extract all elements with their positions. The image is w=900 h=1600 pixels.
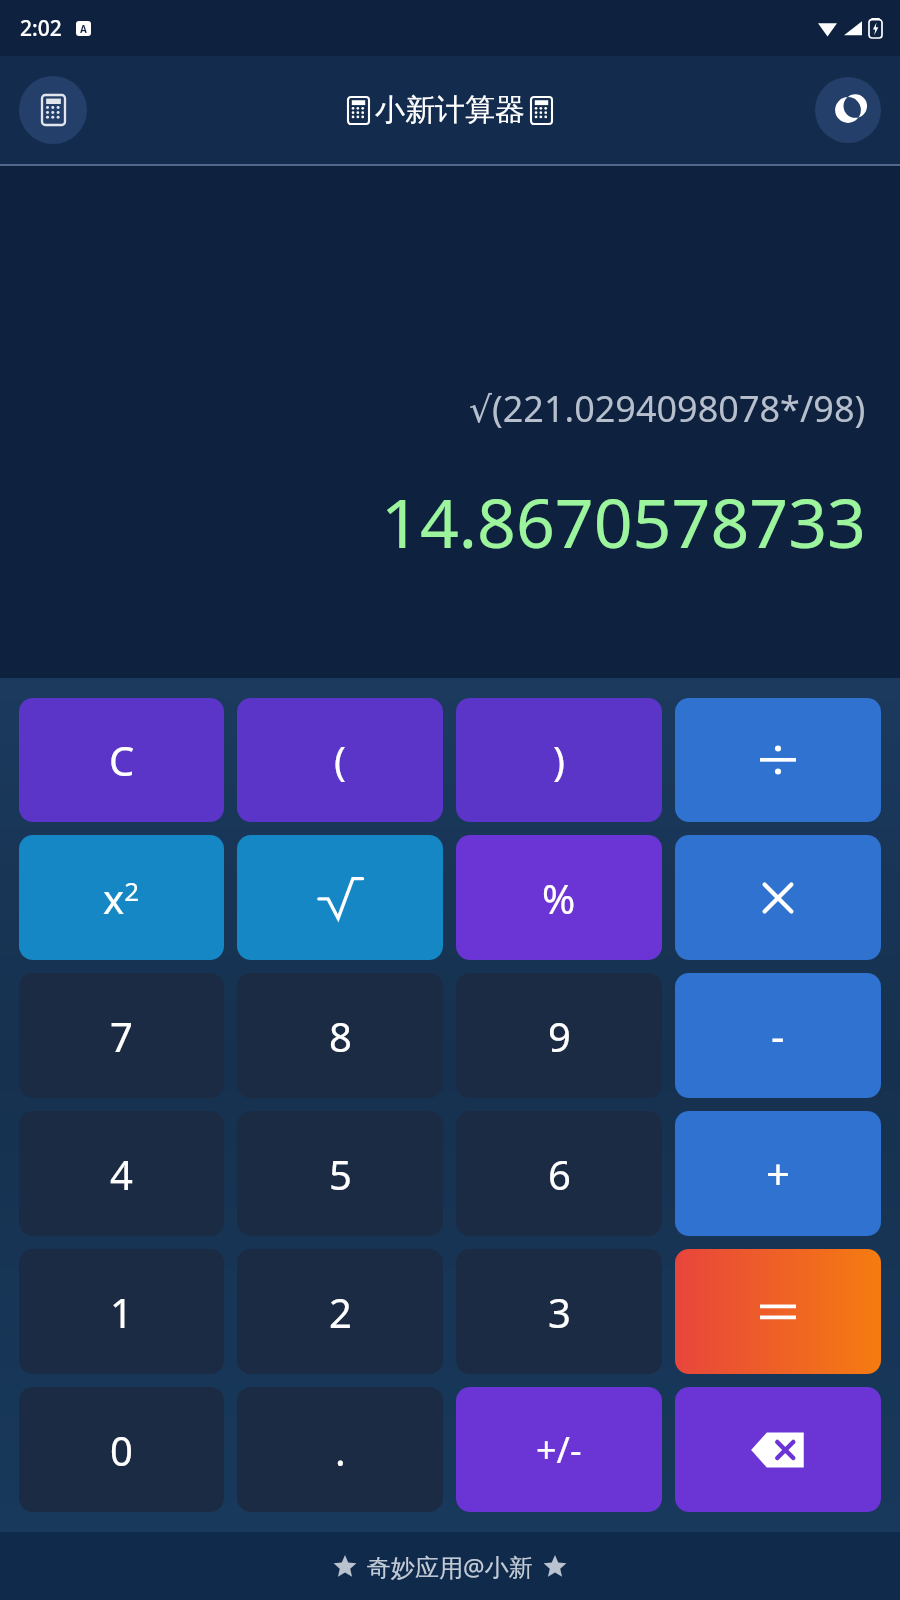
staticText: - xyxy=(771,1007,785,1064)
button[interactable]: Backspace xyxy=(675,1387,881,1512)
staticText: 14.8670578733 xyxy=(381,475,866,568)
staticText: A xyxy=(80,22,87,36)
button[interactable] xyxy=(675,835,881,960)
staticText: 2 xyxy=(329,1285,352,1339)
staticText: 7 xyxy=(110,1009,133,1063)
staticText: 9 xyxy=(548,1009,571,1063)
staticText: +/- xyxy=(536,1425,582,1474)
button[interactable] xyxy=(237,835,443,960)
staticText: 4 xyxy=(110,1147,133,1201)
staticText: + xyxy=(766,1145,791,1202)
button[interactable]: 2 xyxy=(237,1249,443,1374)
staticText: % xyxy=(542,871,576,925)
button[interactable] xyxy=(675,698,881,822)
staticText: 0 xyxy=(110,1423,133,1477)
button[interactable]: 6 xyxy=(456,1111,662,1236)
button[interactable]: C xyxy=(19,698,224,822)
staticText: 小新计算器 xyxy=(375,91,525,129)
staticText: 5 xyxy=(329,1147,352,1201)
button[interactable] xyxy=(675,1249,881,1374)
button[interactable]: + xyxy=(675,1111,881,1236)
staticText: 1 xyxy=(110,1285,133,1339)
staticText: ( xyxy=(334,733,346,787)
staticText: C xyxy=(109,733,135,787)
button[interactable]: % xyxy=(456,835,662,960)
staticText: √(221.0294098078*/98) xyxy=(469,384,866,433)
staticText: . xyxy=(335,1423,346,1477)
staticText: ) xyxy=(553,733,565,787)
button[interactable]: Calculator modes xyxy=(19,76,87,144)
button[interactable]: Toggle dark mode xyxy=(815,77,881,143)
button[interactable]: x2 xyxy=(19,835,224,960)
button[interactable]: +/- xyxy=(456,1387,662,1512)
button[interactable]: 8 xyxy=(237,973,443,1098)
button[interactable]: - xyxy=(675,973,881,1098)
button[interactable]: 9 xyxy=(456,973,662,1098)
staticText: x2 xyxy=(103,871,140,925)
staticText: 8 xyxy=(329,1009,352,1063)
button[interactable]: 4 xyxy=(19,1111,224,1236)
button[interactable]: 7 xyxy=(19,973,224,1098)
staticText: 2:02 xyxy=(20,14,62,43)
staticText: 奇妙应用@小新 xyxy=(367,1550,533,1583)
button[interactable]: 3 xyxy=(456,1249,662,1374)
staticText: 3 xyxy=(548,1285,571,1339)
button[interactable]: ) xyxy=(456,698,662,822)
staticText: 6 xyxy=(548,1147,571,1201)
button[interactable]: 1 xyxy=(19,1249,224,1374)
button[interactable]: . xyxy=(237,1387,443,1512)
button[interactable]: ( xyxy=(237,698,443,822)
button[interactable]: 5 xyxy=(237,1111,443,1236)
button[interactable]: 0 xyxy=(19,1387,224,1512)
